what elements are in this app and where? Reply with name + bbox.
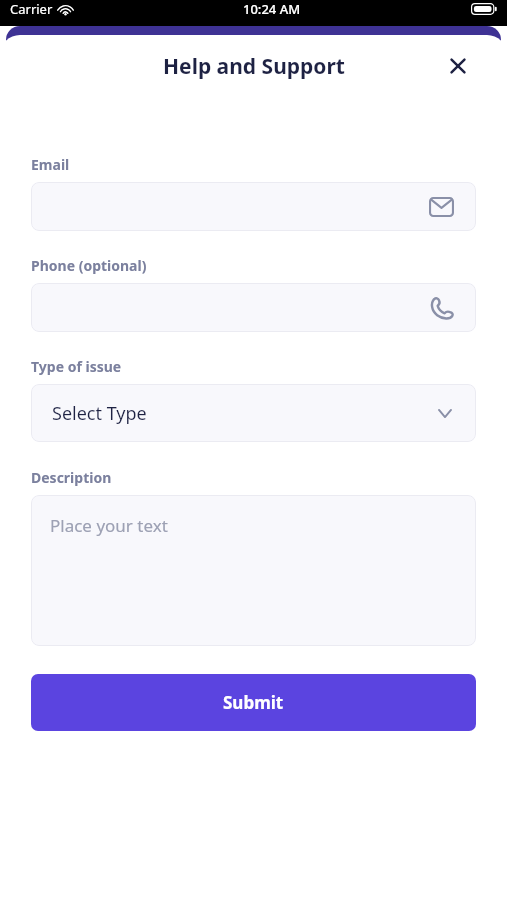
staticText: Help and Support <box>163 52 345 81</box>
staticText: Place your text <box>50 514 168 537</box>
staticText: Description <box>31 468 112 487</box>
button[interactable] <box>31 283 476 332</box>
button[interactable]: Close <box>441 49 475 83</box>
staticText: 10:24 AM <box>243 0 301 18</box>
staticText: Phone (optional) <box>31 256 147 275</box>
staticText: Select Type <box>52 401 147 426</box>
button[interactable] <box>31 182 476 231</box>
staticText: Type of issue <box>31 357 122 376</box>
button[interactable]: Select Type <box>31 384 476 442</box>
staticText: Carrier <box>10 0 53 18</box>
staticText: Email <box>31 155 70 174</box>
button[interactable]: Place your text <box>31 495 476 646</box>
staticText: Submit <box>223 691 284 714</box>
button[interactable]: Submit <box>31 674 476 731</box>
